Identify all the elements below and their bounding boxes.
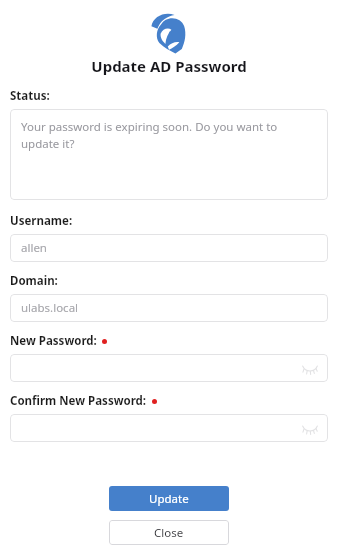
- staticText: Username:: [10, 213, 73, 229]
- button[interactable]: Close: [109, 520, 229, 545]
- staticText: Confirm New Password:: [10, 393, 147, 409]
- button[interactable]: Your password is expiring soon. Do you w…: [10, 109, 328, 200]
- staticText: Close: [154, 525, 184, 541]
- button[interactable]: Show password: [10, 354, 328, 382]
- button[interactable]: allen: [10, 234, 328, 262]
- button[interactable]: Update: [109, 486, 229, 511]
- staticText: Update AD Password: [91, 56, 247, 76]
- staticText: Status:: [10, 88, 50, 104]
- button[interactable]: Show password: [300, 358, 320, 378]
- staticText: New Password:: [10, 333, 97, 349]
- staticText: Update: [149, 491, 189, 507]
- staticText: Domain:: [10, 273, 58, 289]
- button[interactable]: ulabs.local: [10, 294, 328, 322]
- button[interactable]: Show password: [300, 418, 320, 438]
- button[interactable]: Show password: [10, 414, 328, 442]
- staticText: ulabs.local: [21, 300, 79, 316]
- staticText: Your password is expiring soon. Do you w…: [21, 119, 317, 152]
- staticText: allen: [21, 240, 47, 256]
